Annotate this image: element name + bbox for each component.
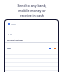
staticText: receive in cash	[20, 13, 44, 18]
staticText: Payment methods	[7, 39, 23, 41]
staticText: Send to any bank,	[17, 3, 47, 8]
staticText: mobile money or	[18, 8, 46, 13]
button[interactable]: Account	[5, 23, 58, 25]
button[interactable]	[5, 43, 58, 54]
